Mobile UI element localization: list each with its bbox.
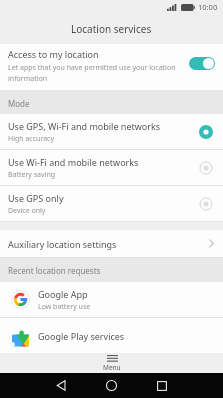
button[interactable]: Use GPS only <box>0 186 223 221</box>
button[interactable] <box>137 373 187 398</box>
staticText: Access to my location <box>8 48 99 60</box>
button[interactable]: Access to my location <box>0 44 223 90</box>
staticText: Device only <box>8 206 46 216</box>
button[interactable] <box>86 373 137 398</box>
staticText: Use GPS, Wi-Fi and mobile networks <box>8 120 161 132</box>
staticText: Battery saving <box>8 170 56 180</box>
button[interactable]: Use GPS, Wi-Fi and mobile networks <box>0 114 223 149</box>
staticText: Low battery use <box>38 302 91 312</box>
button[interactable] <box>189 57 215 70</box>
staticText: Location services <box>71 22 152 36</box>
staticText: Use GPS only <box>8 192 64 204</box>
staticText: Mode <box>8 98 30 109</box>
staticText: Google App <box>38 288 88 300</box>
button[interactable] <box>36 373 86 398</box>
staticText: information <box>8 74 48 84</box>
staticText: Google Play services <box>38 330 125 342</box>
button[interactable]: Use Wi-Fi and mobile networks <box>0 150 223 185</box>
button[interactable]: Auxiliary location settings <box>0 230 223 257</box>
button[interactable]: Menu <box>0 353 223 373</box>
staticText: Use Wi-Fi and mobile networks <box>8 156 139 168</box>
staticText: 10:00 <box>198 2 218 12</box>
staticText: Let apps that you have permitted use you… <box>8 63 176 73</box>
button[interactable]: Google App <box>0 282 223 317</box>
staticText: Auxiliary location settings <box>8 238 117 250</box>
button[interactable]: Google Play services <box>0 318 223 353</box>
staticText: High accuracy <box>8 134 55 144</box>
staticText: Menu <box>103 363 121 372</box>
staticText: Recent location requests <box>8 265 101 276</box>
